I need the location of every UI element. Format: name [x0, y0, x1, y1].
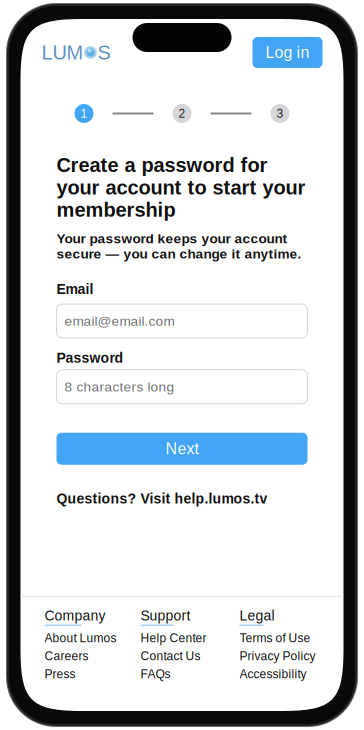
button[interactable]: Log in [252, 37, 322, 68]
staticText: Privacy Policy [239, 649, 315, 663]
staticText: Accessibility [239, 667, 306, 681]
staticText: LUM [41, 41, 83, 64]
button[interactable]: About Lumos [44, 629, 116, 647]
staticText: Your password keeps your account secure … [56, 231, 301, 261]
staticText: Log in [265, 44, 309, 61]
button[interactable]: FAQs [140, 665, 170, 683]
button[interactable]: Help Center [140, 629, 206, 647]
staticText: email@email.com [64, 313, 174, 329]
staticText: Questions? Visit help.lumos.tv [56, 491, 267, 506]
button[interactable]: Questions? Visit help.lumos.tv [56, 491, 267, 506]
button[interactable]: Contact Us [140, 647, 200, 665]
staticText: Careers [44, 649, 88, 663]
staticText: 2 [178, 107, 185, 120]
staticText: Press [44, 667, 75, 681]
staticText: Terms of Use [239, 631, 310, 645]
staticText: Company [44, 608, 105, 623]
button[interactable]: Careers [44, 647, 88, 665]
staticText: Email [56, 281, 93, 297]
staticText: FAQs [140, 667, 170, 681]
staticText: Legal [239, 608, 274, 623]
staticText: Create a password for your account to st… [56, 154, 305, 221]
staticText: Help Center [140, 631, 206, 645]
button[interactable]: Accessibility [239, 665, 306, 683]
staticText: About Lumos [44, 631, 116, 645]
staticText: Password [56, 350, 123, 366]
staticText: 3 [276, 107, 283, 120]
staticText: Support [140, 608, 190, 623]
staticText: 1 [80, 107, 87, 120]
staticText: Next [165, 440, 198, 458]
staticText: S [97, 41, 110, 64]
button[interactable]: Privacy Policy [239, 647, 315, 665]
button[interactable]: Press [44, 665, 75, 683]
button[interactable]: Terms of Use [239, 629, 310, 647]
staticText: 8 characters long [64, 379, 174, 394]
button[interactable]: Next [56, 433, 307, 465]
staticText: Contact Us [140, 649, 200, 663]
